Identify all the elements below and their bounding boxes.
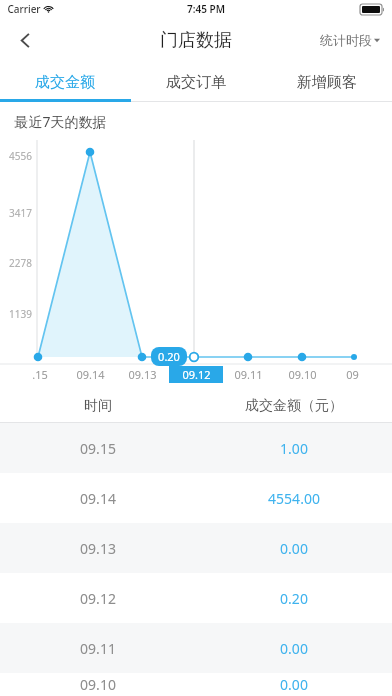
staticText: 09.10: [80, 675, 116, 694]
staticText: 09.15: [80, 439, 116, 458]
staticText: 1.00: [280, 439, 308, 458]
staticText: 0.00: [280, 675, 308, 694]
staticText: 09.14: [76, 367, 105, 382]
staticText: 1139: [9, 307, 32, 321]
staticText: 09.11: [80, 639, 116, 658]
button[interactable]: 09.14: [0, 473, 392, 523]
button[interactable]: 09.12: [0, 573, 392, 623]
staticText: 统计时段: [320, 32, 372, 48]
staticText: 成交订单: [166, 73, 226, 92]
button[interactable]: 统计时段: [312, 18, 392, 62]
button[interactable]: 09.15: [0, 423, 392, 473]
staticText: 0.20: [280, 589, 308, 608]
staticText: 0.00: [280, 539, 308, 558]
staticText: 最近7天的数据: [14, 112, 107, 131]
staticText: 0.20: [158, 349, 180, 364]
button[interactable]: 成交订单: [130, 62, 261, 102]
staticText: 新增顾客: [297, 73, 357, 92]
staticText: 09.14: [80, 489, 116, 508]
staticText: 时间: [84, 397, 112, 415]
staticText: 4554.00: [268, 489, 320, 508]
staticText: 09.13: [128, 367, 157, 382]
staticText: 09.11: [234, 367, 263, 382]
staticText: 0.00: [280, 639, 308, 658]
button[interactable]: 新增顾客: [261, 62, 392, 102]
staticText: 门店数据: [160, 29, 232, 52]
button[interactable]: 09.11: [0, 623, 392, 673]
button[interactable]: 成交金额: [0, 62, 130, 102]
staticText: 成交金额（元）: [245, 397, 343, 415]
staticText: 7:45 PM: [187, 2, 225, 16]
staticText: 09.12: [182, 367, 211, 382]
staticText: 09.12: [80, 589, 116, 608]
staticText: 3417: [9, 206, 32, 220]
staticText: 成交金额: [35, 73, 95, 92]
staticText: Carrier: [7, 2, 41, 16]
button[interactable]: 09.13: [0, 523, 392, 573]
button[interactable]: 09.10: [0, 673, 392, 696]
staticText: 09.10: [288, 367, 317, 382]
staticText: 09: [346, 367, 359, 382]
staticText: 09.13: [80, 539, 116, 558]
staticText: 2278: [9, 256, 32, 270]
staticText: .15: [32, 367, 48, 382]
button[interactable]: Back: [0, 18, 50, 62]
staticText: 4556: [9, 149, 32, 163]
